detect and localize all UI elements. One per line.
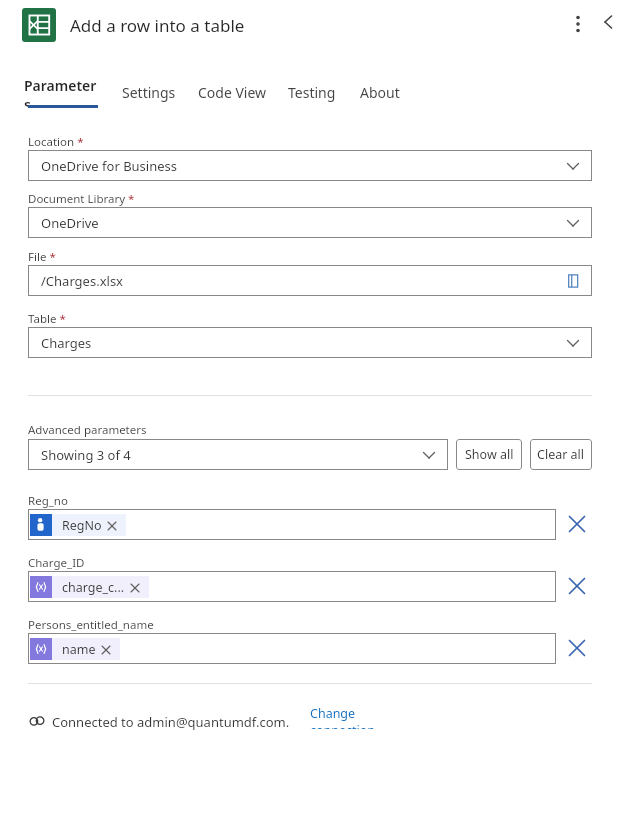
button[interactable]: Showing 3 of 4 (28, 439, 448, 470)
staticText: Parameters (24, 76, 102, 108)
staticText: Change connection (310, 705, 414, 729)
staticText: About (360, 83, 400, 102)
staticText: Table * (28, 311, 66, 327)
staticText: Charges (41, 334, 92, 352)
button[interactable]: /Charges.xlsx (28, 265, 592, 296)
button[interactable]: OneDrive for Business (28, 150, 592, 181)
button[interactable]: Show all (456, 439, 522, 470)
button[interactable]: Delete parameter (564, 511, 590, 537)
staticText: RegNo (62, 517, 102, 534)
button[interactable]: Testing (284, 76, 339, 108)
button[interactable]: name (28, 633, 556, 664)
button[interactable]: More options (562, 8, 594, 40)
button[interactable]: Delete parameter (564, 573, 590, 599)
button[interactable]: About (355, 76, 404, 108)
staticText: OneDrive for Business (41, 157, 178, 175)
staticText: Persons_entitled_name (28, 617, 154, 633)
staticText: Showing 3 of 4 (41, 446, 131, 464)
staticText: Connected to admin@quantumdf.com. (52, 713, 290, 731)
button[interactable]: Code View (194, 76, 270, 108)
staticText: File * (28, 249, 56, 265)
button[interactable]: Settings (117, 76, 180, 108)
staticText: Clear all (537, 446, 585, 463)
button[interactable]: Clear all (530, 439, 592, 470)
staticText: Advanced parameters (28, 422, 147, 438)
button[interactable]: Excel connector (22, 8, 56, 42)
staticText: Location * (28, 134, 84, 150)
button[interactable]: Charges (28, 327, 592, 358)
staticText: OneDrive (41, 214, 99, 232)
staticText: charge_c... (62, 579, 125, 596)
staticText: Charge_ID (28, 555, 85, 571)
button[interactable]: Back (594, 8, 621, 36)
button[interactable]: Browse files (564, 272, 582, 290)
button[interactable]: OneDrive (28, 207, 592, 238)
staticText: Reg_no (28, 493, 68, 509)
staticText: Settings (122, 83, 176, 102)
button[interactable]: Delete parameter (564, 635, 590, 661)
staticText: name (62, 641, 96, 658)
button[interactable]: Parameters (24, 76, 102, 108)
staticText: Code View (198, 83, 267, 102)
staticText: Document Library * (28, 191, 135, 207)
button[interactable]: RegNo (28, 509, 556, 540)
button[interactable]: charge_c... (28, 571, 556, 602)
button[interactable]: Change connection (310, 705, 414, 729)
staticText: Testing (288, 83, 336, 102)
staticText: /Charges.xlsx (41, 272, 123, 290)
staticText: Add a row into a table (70, 14, 245, 37)
staticText: Show all (465, 446, 514, 463)
